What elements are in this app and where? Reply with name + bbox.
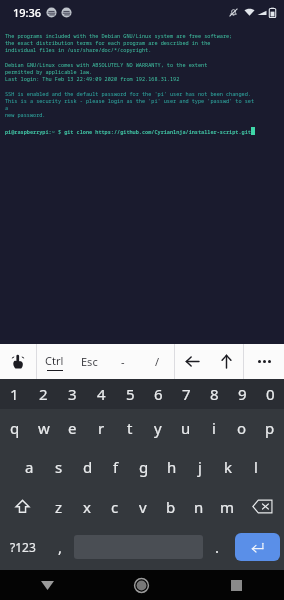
staticText: l (254, 457, 258, 477)
button[interactable]: k (214, 447, 242, 487)
staticText: 7 (182, 384, 191, 404)
button[interactable]: 7 (172, 379, 200, 409)
staticText: - (121, 354, 125, 369)
button[interactable]: - (106, 344, 140, 379)
staticText: 2 (39, 384, 48, 404)
button[interactable]: Ctrl (37, 344, 72, 379)
button[interactable]: Home (94, 570, 189, 600)
staticText: w (38, 418, 50, 438)
button[interactable]: Back (0, 570, 94, 600)
button[interactable]: y (144, 409, 172, 447)
staticText: 6 (154, 384, 163, 404)
button[interactable]: Up arrow (209, 344, 243, 379)
button[interactable]: a (15, 447, 44, 487)
staticText: z (55, 497, 63, 517)
staticText: o (237, 418, 247, 438)
staticText: y (154, 418, 162, 438)
button[interactable]: p (256, 409, 284, 447)
button[interactable]: 9 (228, 379, 256, 409)
button[interactable]: More options (244, 344, 284, 379)
button[interactable]: 0 (256, 379, 284, 409)
button[interactable]: Toggle touch mode (0, 344, 36, 379)
button[interactable]: t (116, 409, 144, 447)
staticText: a (25, 457, 34, 477)
staticText: a (5, 104, 9, 111)
staticText: 1 (10, 384, 19, 404)
staticText: g (139, 457, 149, 477)
button[interactable]: s (44, 447, 73, 487)
staticText: r (98, 418, 105, 438)
button[interactable]: 6 (144, 379, 172, 409)
button[interactable]: i (200, 409, 228, 447)
button[interactable]: c (101, 487, 129, 526)
button[interactable]: l (242, 447, 270, 487)
staticText: 19:36 (13, 5, 42, 20)
staticText: f (113, 457, 119, 477)
staticText: x (83, 497, 91, 517)
button[interactable]: . (203, 526, 231, 568)
button[interactable]: e (58, 409, 87, 447)
button[interactable]: ?123 (0, 526, 46, 568)
button[interactable]: j (186, 447, 214, 487)
button[interactable]: r (87, 409, 116, 447)
staticText: individual files in /usr/share/doc/*/cop… (5, 46, 152, 53)
staticText: , (58, 537, 63, 557)
staticText: / (155, 354, 160, 369)
staticText: . (215, 537, 220, 557)
staticText: v (139, 497, 147, 517)
button[interactable]: n (185, 487, 213, 526)
button[interactable]: f (102, 447, 130, 487)
button[interactable]: q (0, 409, 29, 447)
staticText: pi@raspberrypi:~ $ git clone https://git… (5, 128, 251, 135)
staticText: the exact distribution terms for each pr… (5, 39, 211, 46)
staticText: permitted by applicable law. (5, 68, 93, 75)
button[interactable]: Shift (0, 487, 44, 526)
staticText: i (212, 418, 216, 438)
button[interactable]: , (46, 526, 74, 568)
button[interactable]: Left arrow (175, 344, 209, 379)
button[interactable]: 4 (87, 379, 116, 409)
button[interactable]: d (73, 447, 102, 487)
button[interactable]: 3 (58, 379, 87, 409)
staticText: Debian GNU/Linux comes with ABSOLUTELY N… (5, 61, 208, 68)
button[interactable]: x (73, 487, 101, 526)
button[interactable]: u (172, 409, 200, 447)
button[interactable]: / (140, 344, 174, 379)
staticText: q (10, 418, 20, 438)
staticText: n (194, 497, 204, 517)
staticText: t (127, 418, 133, 438)
staticText: 8 (210, 384, 219, 404)
staticText: s (55, 457, 63, 477)
staticText: Esc (81, 354, 98, 369)
staticText: j (198, 457, 202, 477)
staticText: new password. (5, 111, 46, 118)
button[interactable]: 5 (116, 379, 144, 409)
button[interactable]: o (228, 409, 256, 447)
button[interactable]: 1 (0, 379, 29, 409)
button[interactable]: Recent apps (189, 570, 284, 600)
staticText: p (265, 418, 275, 438)
staticText: b (166, 497, 176, 517)
staticText: h (167, 457, 177, 477)
button[interactable]: b (157, 487, 185, 526)
staticText: e (68, 418, 77, 438)
button[interactable]: w (29, 409, 58, 447)
staticText: d (83, 457, 93, 477)
button[interactable]: m (213, 487, 241, 526)
button[interactable]: g (130, 447, 158, 487)
button[interactable]: h (158, 447, 186, 487)
staticText: ?123 (10, 539, 36, 555)
button[interactable]: z (44, 487, 73, 526)
staticText: SSH is enabled and the default password … (5, 90, 251, 97)
staticText: 5 (126, 384, 135, 404)
staticText: Last login: Thu Feb 13 22:49:09 2020 fro… (5, 75, 180, 82)
staticText: The programs included with the Debian GN… (5, 32, 233, 39)
button[interactable]: 8 (200, 379, 228, 409)
staticText: u (181, 418, 191, 438)
button[interactable]: Enter (235, 533, 280, 561)
button[interactable]: v (129, 487, 157, 526)
button[interactable]: Esc (72, 344, 106, 379)
button[interactable]: Backspace (241, 487, 284, 526)
button[interactable]: 2 (29, 379, 58, 409)
